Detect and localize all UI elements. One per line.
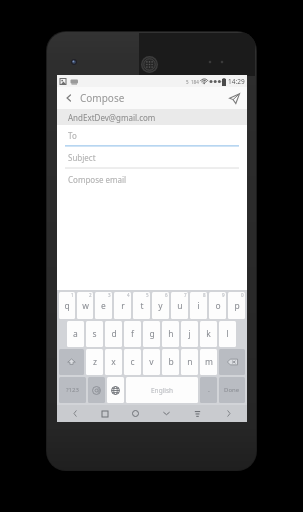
staticText: z xyxy=(93,356,97,368)
staticText: Compose xyxy=(80,91,125,105)
staticText: c xyxy=(130,356,135,368)
staticText: l xyxy=(226,328,229,340)
staticText: v xyxy=(149,356,154,368)
button[interactable]: Compose email xyxy=(57,169,247,191)
staticText: j xyxy=(188,328,191,340)
staticText: u xyxy=(177,300,183,312)
staticText: Compose email xyxy=(68,174,127,185)
staticText: n xyxy=(187,356,193,368)
button[interactable]: v xyxy=(143,349,160,375)
button[interactable]: j xyxy=(181,321,198,347)
staticText: 8 xyxy=(203,292,206,298)
button[interactable]: Done xyxy=(219,377,245,403)
button[interactable]: e xyxy=(95,292,112,319)
staticText: w xyxy=(82,300,89,312)
button[interactable]: t xyxy=(133,292,150,319)
button[interactable]: Previous xyxy=(60,405,90,422)
button[interactable]: w xyxy=(77,292,93,319)
staticText: To xyxy=(68,130,77,141)
button[interactable]: n xyxy=(181,349,198,375)
button[interactable]: p xyxy=(228,292,245,319)
staticText: s xyxy=(92,328,97,340)
staticText: b xyxy=(168,356,174,368)
staticText: 14:29 xyxy=(228,77,245,86)
staticText: t xyxy=(140,300,144,312)
staticText: e xyxy=(101,300,106,312)
staticText: 6 xyxy=(165,292,168,298)
button[interactable]: Subject xyxy=(57,147,247,169)
button[interactable]: Language xyxy=(107,377,124,403)
staticText: 5 xyxy=(146,292,149,298)
button[interactable]: Shift xyxy=(59,349,84,375)
staticText: y xyxy=(158,300,163,312)
staticText: h xyxy=(168,328,174,340)
staticText: AndExtDev@gmail.com xyxy=(68,112,156,123)
button[interactable]: Next xyxy=(213,405,244,422)
button[interactable]: d xyxy=(105,321,122,347)
button[interactable]: o xyxy=(209,292,226,319)
staticText: p xyxy=(234,300,240,312)
button[interactable]: l xyxy=(219,321,236,347)
staticText: k xyxy=(206,328,211,340)
staticText: 184 xyxy=(191,79,199,85)
staticText: m xyxy=(205,356,213,368)
button[interactable]: s xyxy=(86,321,103,347)
staticText: r xyxy=(121,300,125,312)
button[interactable]: f xyxy=(124,321,141,347)
staticText: 7 xyxy=(184,292,187,298)
button[interactable]: k xyxy=(200,321,217,347)
button[interactable]: Navigate up xyxy=(61,90,77,106)
button[interactable]: i xyxy=(190,292,207,319)
button[interactable]: Space xyxy=(126,377,198,403)
button[interactable]: h xyxy=(162,321,179,347)
button[interactable]: Symbols xyxy=(59,377,86,403)
staticText: 2 xyxy=(89,292,92,298)
button[interactable]: b xyxy=(162,349,179,375)
staticText: q xyxy=(64,300,70,312)
button[interactable]: z xyxy=(86,349,103,375)
staticText: Done xyxy=(224,386,240,394)
button[interactable]: m xyxy=(200,349,217,375)
staticText: . xyxy=(208,385,210,395)
button[interactable]: u xyxy=(171,292,188,319)
staticText: 5 xyxy=(186,79,189,85)
button[interactable]: Hide keyboard xyxy=(151,405,182,422)
button[interactable]: g xyxy=(143,321,160,347)
staticText: f xyxy=(131,328,134,340)
staticText: i xyxy=(197,300,200,312)
staticText: English xyxy=(151,386,174,395)
staticText: 4 xyxy=(127,292,130,298)
staticText: d xyxy=(111,328,117,340)
button[interactable]: a xyxy=(67,321,84,347)
staticText: Subject xyxy=(68,152,96,163)
staticText: 3 xyxy=(108,292,111,298)
staticText: g xyxy=(149,328,155,340)
button[interactable]: y xyxy=(152,292,169,319)
button[interactable]: Switch keyboard xyxy=(182,405,213,422)
staticText: 0 xyxy=(241,292,244,298)
button[interactable]: AndExtDev@gmail.com xyxy=(57,109,247,125)
button[interactable]: q xyxy=(59,292,75,319)
button[interactable]: Backspace xyxy=(219,349,245,375)
button[interactable]: x xyxy=(105,349,122,375)
staticText: ?123 xyxy=(66,386,79,394)
staticText: x xyxy=(111,356,116,368)
button[interactable]: Recents xyxy=(90,405,120,422)
staticText: 1 xyxy=(71,292,74,298)
staticText: a xyxy=(73,328,78,340)
staticText: o xyxy=(215,300,221,312)
staticText: 9 xyxy=(222,292,225,298)
button[interactable]: c xyxy=(124,349,141,375)
button[interactable]: r xyxy=(114,292,131,319)
button[interactable]: At sign xyxy=(88,377,105,403)
button[interactable]: Send xyxy=(225,89,243,107)
button[interactable]: Home xyxy=(120,405,151,422)
button[interactable]: To xyxy=(57,125,247,147)
